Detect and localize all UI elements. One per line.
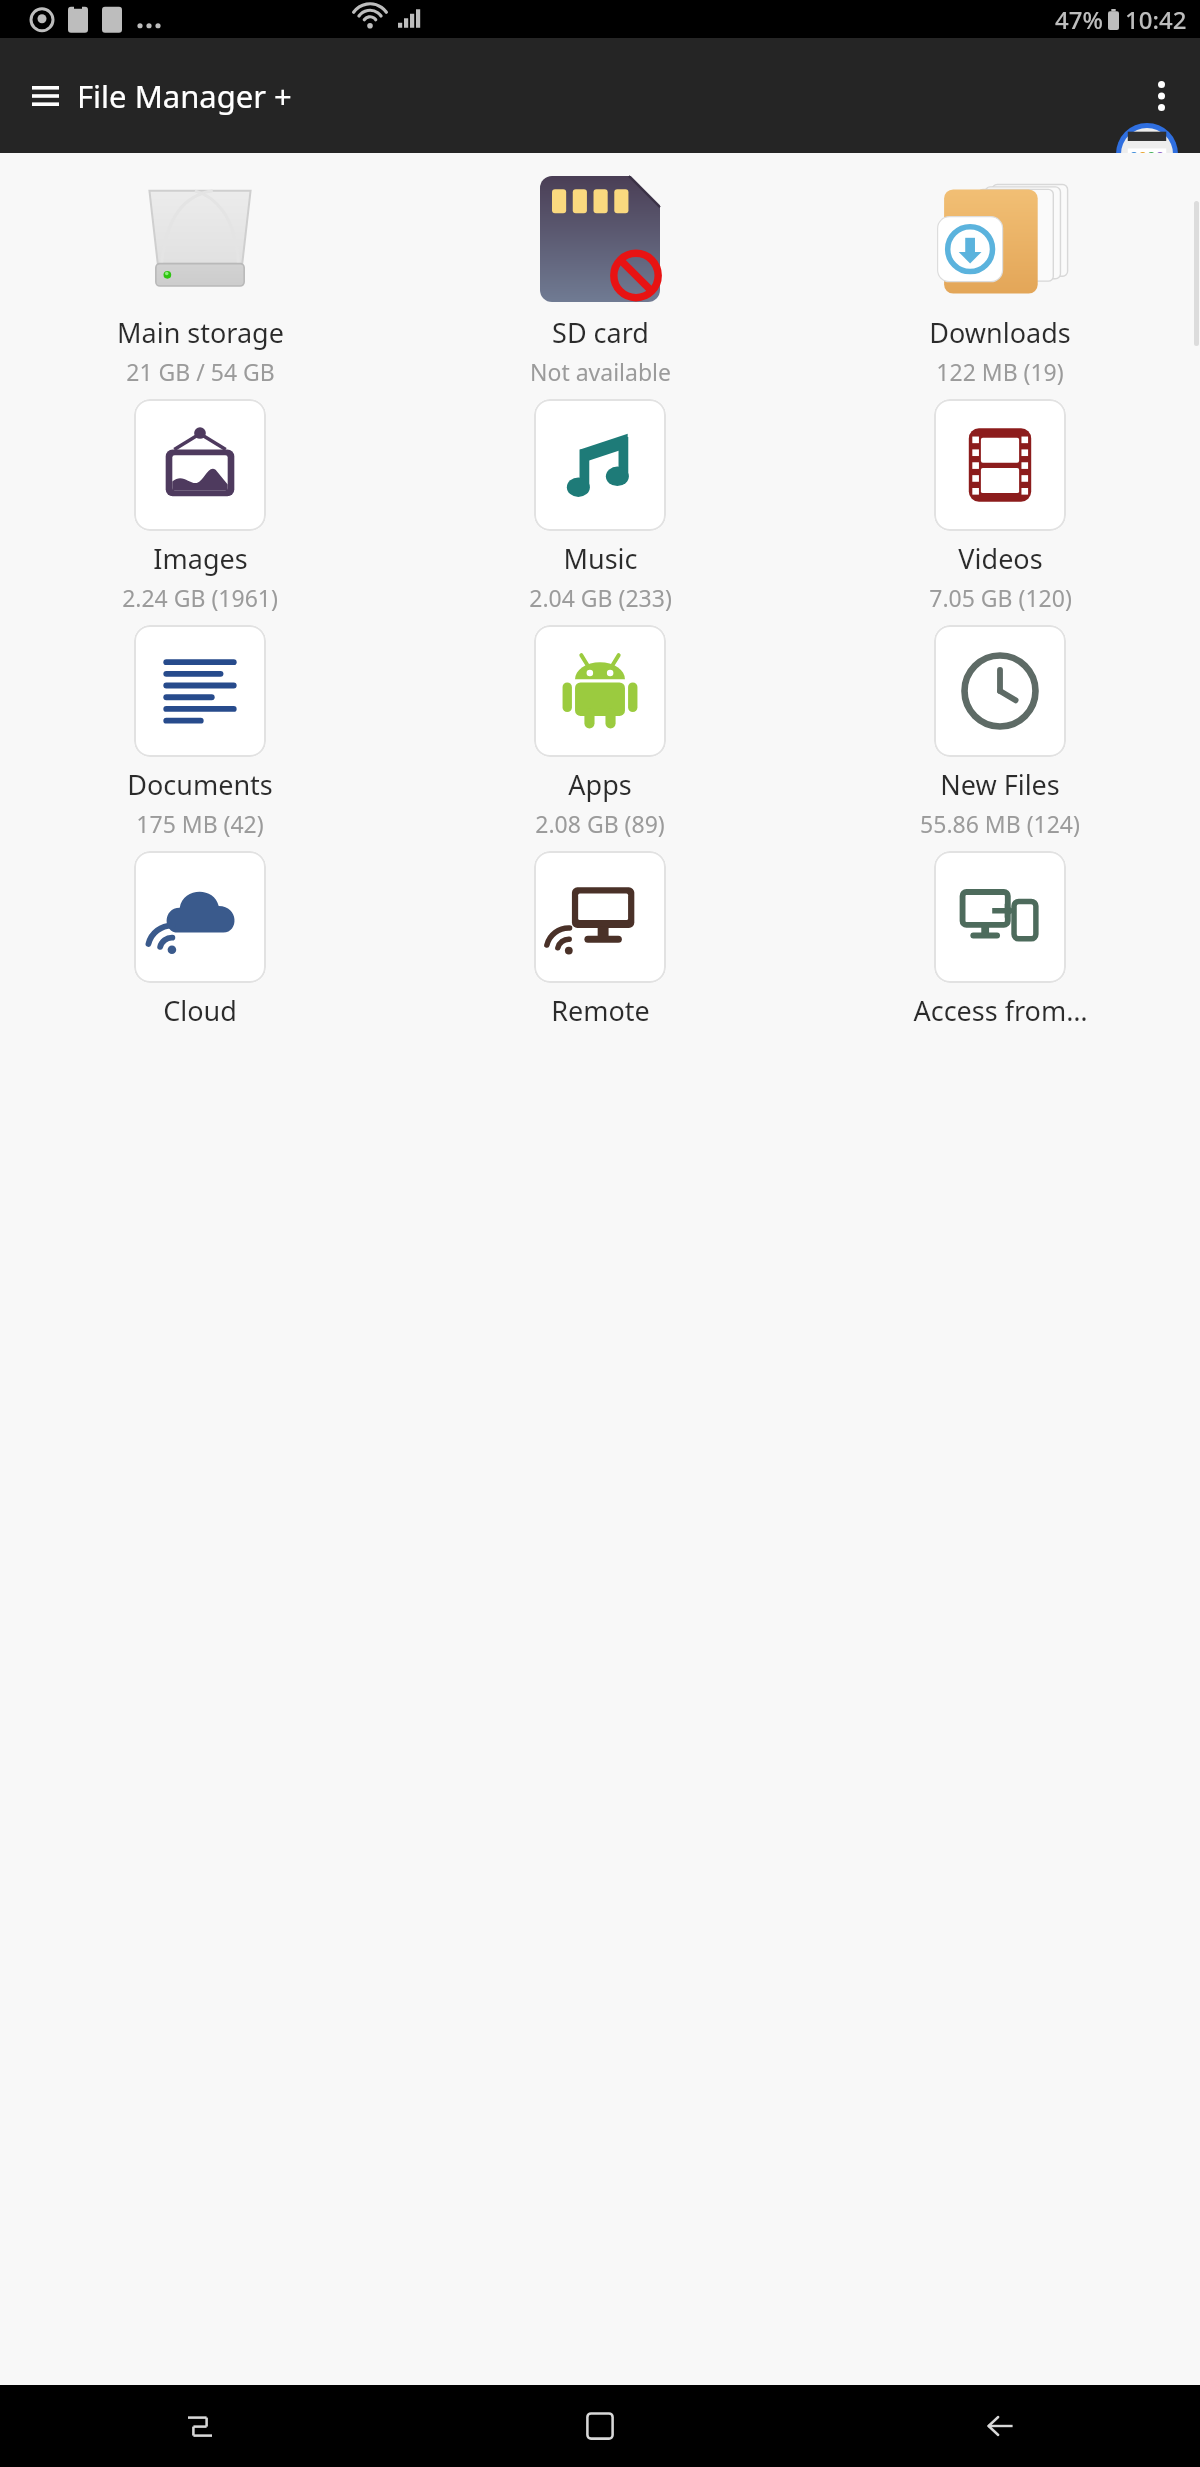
- button[interactable]: Home: [564, 2390, 636, 2462]
- staticText: 175 MB (42): [136, 808, 264, 839]
- staticText: Cloud: [163, 992, 237, 1029]
- staticText: Downloads: [929, 314, 1071, 351]
- button[interactable]: Remote: [400, 845, 800, 1063]
- staticText: 21 GB / 54 GB: [126, 356, 275, 387]
- staticText: Documents: [127, 766, 273, 803]
- staticText: 47%: [1055, 3, 1103, 36]
- staticText: Apps: [568, 766, 632, 803]
- staticText: Main storage: [117, 314, 284, 351]
- button[interactable]: Music: [400, 393, 800, 619]
- staticText: 2.04 GB (233): [529, 582, 672, 613]
- staticText: File Manager +: [77, 75, 292, 117]
- staticText: 10:42: [1125, 3, 1187, 36]
- button[interactable]: Downloads: [800, 167, 1200, 393]
- staticText: Not available: [530, 356, 671, 387]
- button[interactable]: Apps: [400, 619, 800, 845]
- staticText: Music: [563, 540, 638, 577]
- button[interactable]: Back: [964, 2390, 1036, 2462]
- button[interactable]: Main storage: [0, 167, 400, 393]
- button[interactable]: Recents: [164, 2390, 236, 2462]
- staticText: Access from…: [913, 992, 1088, 1029]
- staticText: 55.86 MB (124): [920, 808, 1080, 839]
- staticText: 122 MB (19): [936, 356, 1064, 387]
- button[interactable]: Screenshot preview: [1116, 123, 1178, 185]
- button[interactable]: Documents: [0, 619, 400, 845]
- button[interactable]: Open navigation menu: [18, 69, 72, 123]
- button[interactable]: New Files: [800, 619, 1200, 845]
- staticText: Videos: [958, 540, 1043, 577]
- staticText: New Files: [940, 766, 1060, 803]
- button[interactable]: Cloud: [0, 845, 400, 1063]
- staticText: Images: [153, 540, 248, 577]
- button[interactable]: Videos: [800, 393, 1200, 619]
- button[interactable]: More options: [1134, 69, 1188, 123]
- staticText: SD card: [552, 314, 649, 351]
- staticText: 2.24 GB (1961): [122, 582, 278, 613]
- button[interactable]: Access from…: [800, 845, 1200, 1063]
- button[interactable]: SD card: [400, 167, 800, 393]
- staticText: Remote: [551, 992, 650, 1029]
- staticText: 7.05 GB (120): [929, 582, 1072, 613]
- button[interactable]: Images: [0, 393, 400, 619]
- staticText: 2.08 GB (89): [535, 808, 665, 839]
